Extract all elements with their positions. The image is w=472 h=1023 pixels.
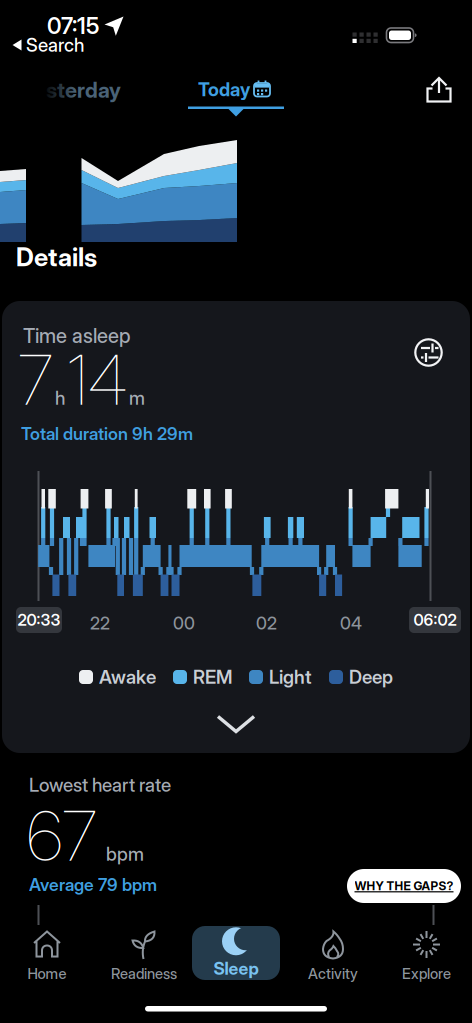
button[interactable]: Readiness: [111, 928, 177, 982]
staticText: sterday: [46, 77, 121, 103]
staticText: 00: [173, 613, 195, 633]
button[interactable]: WHY THE GAPS?: [347, 869, 461, 903]
staticText: Total duration 9h 29m: [21, 423, 193, 444]
staticText: 02: [256, 613, 277, 633]
staticText: 06:02: [413, 611, 456, 629]
staticText: 07:15: [47, 12, 99, 39]
staticText: 67: [27, 796, 97, 876]
staticText: Light: [269, 666, 312, 688]
button[interactable]: Sleep: [192, 926, 280, 980]
staticText: 14: [67, 340, 127, 420]
staticText: Awake: [99, 666, 156, 688]
staticText: Lowest heart rate: [29, 774, 171, 796]
button[interactable]: Today: [198, 78, 275, 100]
staticText: Deep: [349, 666, 393, 688]
staticText: bpm: [106, 843, 144, 865]
button[interactable]: Share: [426, 72, 460, 106]
staticText: Readiness: [111, 965, 177, 982]
staticText: 7: [18, 340, 53, 420]
staticText: WHY THE GAPS?: [354, 879, 453, 893]
staticText: h: [55, 387, 65, 409]
staticText: Search: [26, 34, 84, 56]
staticText: Details: [16, 242, 97, 272]
staticText: m: [129, 387, 145, 409]
staticText: Time asleep: [23, 324, 131, 348]
staticText: Today: [198, 78, 250, 100]
button[interactable]: Back to Search: [12, 34, 84, 56]
staticText: Sleep: [213, 958, 258, 979]
button[interactable]: Home: [27, 928, 67, 982]
staticText: Activity: [308, 965, 358, 982]
staticText: Explore: [402, 965, 451, 982]
staticText: Average 79 bpm: [29, 874, 157, 895]
button[interactable]: Chart settings: [406, 330, 450, 374]
staticText: 20:33: [17, 611, 60, 629]
button[interactable]: Expand details: [204, 706, 268, 742]
staticText: 22: [90, 613, 110, 633]
button[interactable]: Yesterday: [46, 77, 121, 103]
button[interactable]: Explore: [402, 928, 451, 982]
staticText: 04: [340, 613, 362, 633]
button[interactable]: Activity: [308, 928, 358, 982]
staticText: REM: [193, 666, 232, 688]
staticText: Home: [27, 965, 66, 982]
